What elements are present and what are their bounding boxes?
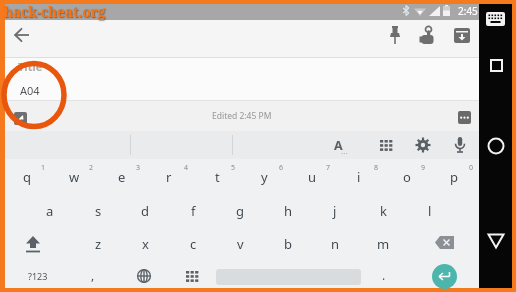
- button[interactable]: [186, 269, 200, 283]
- button[interactable]: .: [374, 263, 394, 287]
- button[interactable]: t: [193, 162, 241, 192]
- button[interactable]: [487, 137, 505, 155]
- staticText: e: [118, 168, 126, 186]
- button[interactable]: [14, 112, 27, 125]
- staticText: Edited 2:45 PM: [212, 110, 272, 122]
- button[interactable]: k: [359, 196, 407, 226]
- staticText: p: [450, 168, 458, 186]
- staticText: u: [308, 168, 317, 186]
- staticText: r: [166, 168, 172, 186]
- staticText: 3: [136, 163, 141, 173]
- button[interactable]: [23, 236, 43, 253]
- button[interactable]: [388, 26, 402, 45]
- staticText: 4: [184, 163, 189, 173]
- button[interactable]: a: [26, 196, 74, 226]
- button[interactable]: [432, 264, 457, 289]
- button[interactable]: v: [216, 229, 264, 259]
- button[interactable]: o: [383, 162, 431, 192]
- staticText: n: [331, 235, 340, 253]
- button[interactable]: g: [216, 196, 264, 226]
- staticText: i: [357, 168, 361, 186]
- staticText: 1: [41, 163, 46, 173]
- button[interactable]: w: [50, 162, 98, 192]
- button[interactable]: s: [74, 196, 122, 226]
- staticText: f: [191, 202, 196, 220]
- staticText: l: [428, 202, 432, 220]
- button[interactable]: c: [169, 229, 217, 259]
- button[interactable]: i: [335, 162, 383, 192]
- staticText: 5: [231, 163, 236, 173]
- button[interactable]: z: [74, 229, 122, 259]
- staticText: m: [377, 235, 390, 253]
- button[interactable]: m: [359, 229, 407, 259]
- staticText: 8: [374, 163, 379, 173]
- staticText: ,: [91, 267, 95, 283]
- button[interactable]: p: [430, 162, 478, 192]
- button[interactable]: u: [288, 162, 336, 192]
- staticText: hack-cheat.org: [4, 3, 106, 21]
- button[interactable]: [13, 26, 31, 44]
- staticText: q: [23, 168, 31, 186]
- staticText: a: [46, 202, 54, 220]
- staticText: Title: [18, 59, 43, 74]
- button[interactable]: [490, 59, 503, 72]
- staticText: b: [284, 235, 292, 253]
- button[interactable]: f: [169, 196, 217, 226]
- staticText: w: [69, 168, 80, 186]
- button[interactable]: x: [121, 229, 169, 259]
- staticText: 2:45: [458, 4, 478, 17]
- button[interactable]: q: [3, 162, 51, 192]
- button[interactable]: [418, 26, 436, 45]
- staticText: s: [95, 202, 102, 220]
- button[interactable]: [137, 269, 151, 283]
- staticText: z: [95, 235, 102, 253]
- staticText: v: [237, 235, 244, 253]
- staticText: k: [380, 202, 387, 220]
- button[interactable]: [454, 28, 470, 43]
- staticText: .: [382, 267, 386, 283]
- button[interactable]: l: [406, 196, 454, 226]
- button[interactable]: e: [98, 162, 146, 192]
- staticText: A04: [20, 83, 40, 98]
- staticText: h: [284, 202, 293, 220]
- button[interactable]: [380, 138, 394, 152]
- button[interactable]: [487, 233, 505, 249]
- button[interactable]: d: [121, 196, 169, 226]
- staticText: 7: [326, 163, 331, 173]
- staticText: 6: [279, 163, 284, 173]
- button[interactable]: [458, 111, 471, 124]
- button[interactable]: ,: [83, 263, 103, 287]
- staticText: 0: [469, 163, 474, 173]
- staticText: 9: [421, 163, 426, 173]
- staticText: j: [333, 202, 337, 220]
- button[interactable]: n: [311, 229, 359, 259]
- button[interactable]: j: [311, 196, 359, 226]
- staticText: d: [141, 202, 149, 220]
- staticText: o: [403, 168, 411, 186]
- button[interactable]: [415, 137, 431, 153]
- staticText: g: [236, 202, 244, 220]
- button[interactable]: y: [240, 162, 288, 192]
- staticText: y: [261, 168, 268, 186]
- button[interactable]: [435, 236, 454, 249]
- button[interactable]: h: [264, 196, 312, 226]
- button[interactable]: A: [327, 136, 349, 154]
- staticText: x: [142, 235, 149, 253]
- staticText: t: [215, 168, 220, 186]
- button[interactable]: r: [145, 162, 193, 192]
- button[interactable]: b: [264, 229, 312, 259]
- button[interactable]: [486, 12, 505, 26]
- staticText: ...: [341, 146, 348, 154]
- staticText: A: [334, 137, 343, 154]
- button[interactable]: ?123: [18, 264, 58, 288]
- staticText: c: [190, 235, 197, 253]
- button[interactable]: [454, 137, 466, 154]
- staticText: ?123: [28, 270, 48, 282]
- staticText: 2: [89, 163, 94, 173]
